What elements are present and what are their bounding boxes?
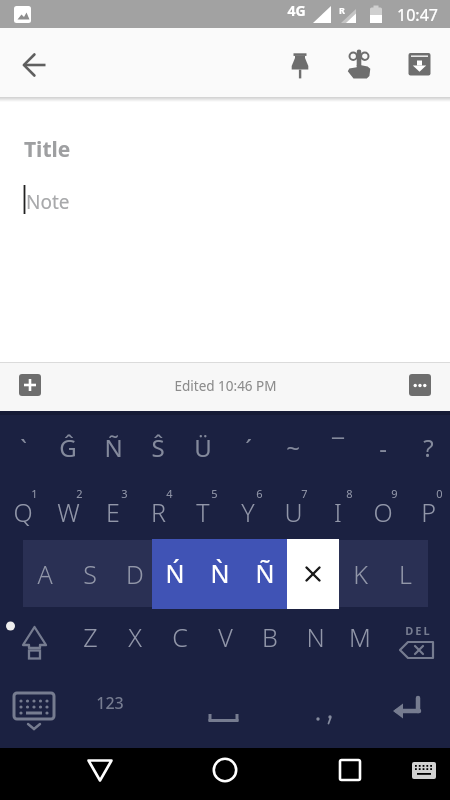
button[interactable] — [180, 415, 225, 478]
button[interactable] — [135, 415, 180, 478]
staticText: B — [262, 620, 278, 654]
staticText: D — [126, 557, 144, 591]
button[interactable] — [337, 40, 385, 88]
staticText: Ǹ — [210, 556, 230, 590]
button[interactable] — [395, 40, 443, 88]
staticText: U — [284, 495, 303, 529]
button[interactable] — [360, 478, 405, 540]
staticText: 8 — [346, 486, 353, 501]
staticText: DEL — [405, 623, 432, 638]
staticText: C — [172, 620, 188, 654]
button[interactable] — [383, 540, 428, 608]
staticText: ? — [423, 431, 434, 464]
button[interactable] — [405, 415, 450, 478]
staticText: Edited 10:46 PM — [174, 377, 277, 395]
button[interactable] — [135, 478, 180, 540]
staticText: 123 — [96, 692, 124, 714]
button[interactable]: Ǹ — [175, 547, 265, 599]
staticText: 6 — [256, 486, 263, 501]
button[interactable] — [225, 478, 270, 540]
staticText: Z — [83, 620, 98, 654]
staticText: A — [37, 557, 53, 591]
staticText: Y — [241, 495, 255, 529]
button[interactable] — [68, 608, 113, 675]
staticText: 3 — [121, 486, 128, 501]
staticText: 9 — [391, 486, 398, 501]
button[interactable] — [11, 39, 59, 87]
button[interactable] — [322, 748, 378, 800]
staticText: R — [339, 4, 345, 16]
staticText: X — [128, 620, 142, 654]
button[interactable] — [360, 415, 405, 478]
button[interactable] — [23, 540, 68, 608]
staticText: 4G — [287, 1, 306, 20]
button[interactable] — [315, 415, 360, 478]
staticText: Ŝ — [151, 431, 165, 464]
button[interactable] — [270, 415, 315, 478]
staticText: K — [353, 557, 368, 591]
button[interactable] — [409, 374, 431, 396]
button[interactable] — [80, 680, 140, 742]
button[interactable] — [404, 754, 444, 794]
staticText: 5 — [211, 486, 218, 501]
button[interactable] — [90, 478, 135, 540]
staticText: T — [196, 495, 210, 529]
button[interactable] — [45, 478, 90, 540]
button[interactable] — [113, 608, 158, 675]
button[interactable] — [276, 40, 324, 88]
staticText: Note — [26, 189, 70, 215]
staticText: ~ — [286, 431, 300, 464]
button[interactable] — [300, 680, 360, 742]
button[interactable] — [72, 748, 128, 800]
staticText: N — [306, 620, 325, 654]
button[interactable] — [158, 608, 203, 675]
staticText: Ü — [194, 431, 212, 464]
button[interactable] — [315, 478, 360, 540]
button[interactable] — [113, 540, 158, 608]
button[interactable] — [0, 415, 45, 478]
button[interactable] — [293, 608, 338, 675]
staticText: W — [57, 495, 80, 529]
staticText: Ñ — [255, 556, 275, 590]
staticText: 10:47 — [397, 4, 438, 26]
staticText: I — [334, 495, 342, 529]
button[interactable] — [90, 415, 135, 478]
button[interactable] — [382, 608, 450, 675]
staticText: Ĝ — [59, 431, 77, 464]
staticText: ¯ — [332, 431, 344, 464]
button[interactable] — [19, 374, 41, 396]
button[interactable] — [45, 415, 90, 478]
staticText: V — [218, 620, 233, 654]
button[interactable] — [225, 415, 270, 478]
staticText: 0 — [436, 486, 443, 501]
button[interactable]: Ń — [130, 547, 220, 599]
button[interactable] — [370, 680, 440, 742]
button[interactable] — [270, 478, 315, 540]
button[interactable] — [8, 680, 64, 742]
staticText: Ñ — [104, 431, 123, 464]
staticText: 1 — [31, 486, 38, 501]
button[interactable] — [405, 478, 450, 540]
button[interactable] — [203, 608, 248, 675]
staticText: Q — [13, 495, 33, 529]
button[interactable]: Ñ — [220, 547, 310, 599]
staticText: R — [151, 495, 166, 529]
button[interactable] — [0, 478, 45, 540]
button[interactable] — [12, 608, 62, 675]
staticText: O — [373, 495, 393, 529]
button[interactable] — [150, 680, 300, 742]
staticText: ` — [20, 431, 27, 464]
staticText: ´ — [245, 431, 252, 464]
button[interactable] — [180, 478, 225, 540]
staticText: M — [349, 620, 371, 654]
button[interactable] — [68, 540, 113, 608]
staticText: S — [83, 557, 97, 591]
button[interactable] — [248, 608, 293, 675]
staticText: Title — [24, 135, 71, 164]
button[interactable] — [287, 539, 339, 609]
button[interactable] — [338, 608, 383, 675]
button[interactable] — [197, 748, 253, 800]
staticText: E — [106, 495, 120, 529]
staticText: P — [421, 495, 436, 529]
button[interactable] — [338, 540, 383, 608]
